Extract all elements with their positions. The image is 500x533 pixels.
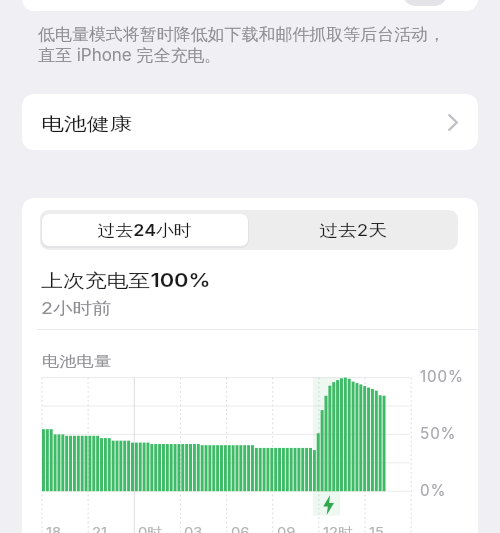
staticText: 06 [231,524,250,533]
other: 电池健康 [448,114,458,131]
staticText: 上次充电至100% [41,269,211,292]
staticText: 18 [46,524,62,533]
staticText: 50% [420,424,457,442]
button[interactable]: 过去2天 [248,210,458,250]
staticText: 过去2天 [319,220,388,241]
staticText: 0% [420,481,447,499]
staticText: 100% [420,367,464,385]
staticText: 2小时前 [41,298,112,319]
staticText: 电池健康 [41,113,132,136]
staticText: 过去24小时 [98,220,192,241]
button[interactable]: 过去24小时 [42,214,248,246]
button[interactable]: 电池健康 [22,94,478,150]
staticText: 09 [277,524,296,533]
staticText: 03 [184,524,203,533]
staticText: 0时 [138,524,163,533]
button[interactable] [22,0,478,11]
staticText: 12时 [323,524,353,533]
other: 充电中 [322,495,335,515]
staticText: 15 [369,524,385,533]
staticText: 电池电量 [42,352,111,370]
staticText: 21 [92,524,108,533]
staticText: 低电量模式将暂时降低如下载和邮件抓取等后台活动， 直至 iPhone 完全充电。 [38,24,446,66]
